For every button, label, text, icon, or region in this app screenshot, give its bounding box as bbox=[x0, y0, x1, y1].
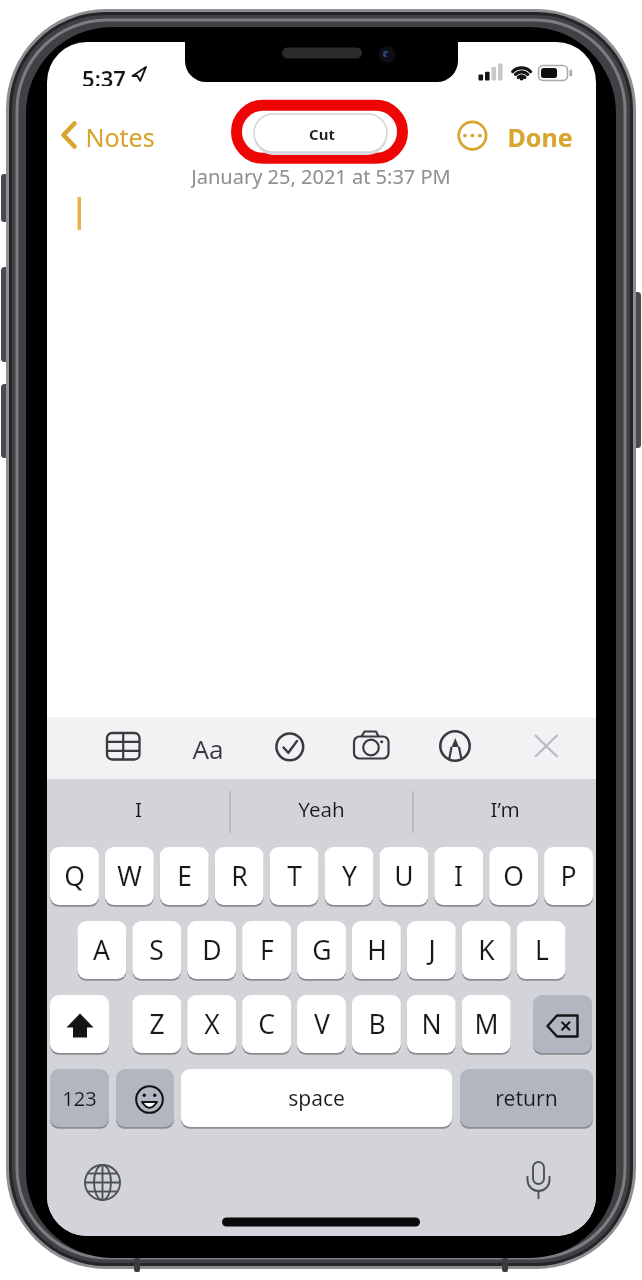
staticText: return bbox=[495, 1084, 558, 1113]
button[interactable]: J bbox=[407, 921, 456, 979]
staticText: X bbox=[204, 1006, 220, 1042]
button[interactable] bbox=[86, 1165, 122, 1201]
staticText: E bbox=[177, 858, 192, 894]
button[interactable] bbox=[116, 1069, 174, 1127]
button[interactable] bbox=[524, 722, 566, 764]
staticText: P bbox=[560, 858, 577, 894]
button[interactable]: Done bbox=[505, 120, 575, 150]
button[interactable]: S bbox=[132, 921, 181, 979]
staticText: B bbox=[368, 1006, 386, 1042]
button[interactable]: space bbox=[181, 1069, 452, 1127]
button[interactable]: X bbox=[187, 995, 236, 1053]
staticText: O bbox=[503, 858, 524, 894]
button[interactable]: K bbox=[462, 921, 511, 979]
button[interactable]: Aa bbox=[186, 731, 230, 760]
button[interactable]: L bbox=[517, 921, 566, 979]
staticText: J bbox=[428, 932, 436, 968]
button[interactable] bbox=[343, 722, 398, 764]
staticText: January 25, 2021 at 5:37 PM bbox=[191, 163, 451, 189]
staticText: W bbox=[117, 858, 142, 894]
button[interactable]: 123 bbox=[50, 1069, 109, 1127]
button[interactable]: Z bbox=[132, 995, 181, 1053]
button[interactable]: T bbox=[270, 847, 319, 905]
staticText: 123 bbox=[62, 1085, 97, 1112]
staticText: G bbox=[312, 932, 332, 968]
button[interactable]: M bbox=[462, 995, 511, 1053]
button[interactable]: Y bbox=[325, 847, 374, 905]
button[interactable]: F bbox=[242, 921, 291, 979]
button[interactable]: Notes bbox=[85, 120, 180, 150]
staticText: Q bbox=[64, 858, 85, 894]
staticText: A bbox=[93, 932, 110, 968]
staticText: H bbox=[367, 932, 387, 968]
staticText: Yeah bbox=[298, 795, 345, 823]
button[interactable]: E bbox=[160, 847, 209, 905]
staticText: I bbox=[454, 858, 463, 894]
button[interactable] bbox=[432, 722, 476, 764]
button[interactable]: N bbox=[407, 995, 456, 1053]
staticText: K bbox=[478, 932, 495, 968]
button[interactable]: D bbox=[187, 921, 236, 979]
staticText: Notes bbox=[85, 120, 155, 150]
button[interactable]: H bbox=[352, 921, 401, 979]
staticText: 5:37 bbox=[82, 63, 126, 86]
staticText: I’m bbox=[490, 795, 520, 823]
button[interactable]: I’m bbox=[413, 785, 596, 833]
staticText: Aa bbox=[192, 731, 224, 760]
staticText: I bbox=[135, 795, 142, 823]
button[interactable]: B bbox=[352, 995, 401, 1053]
staticText: R bbox=[231, 858, 248, 894]
staticText: M bbox=[474, 1006, 499, 1042]
button[interactable]: W bbox=[105, 847, 154, 905]
staticText: Z bbox=[149, 1006, 165, 1042]
button[interactable]: G bbox=[297, 921, 346, 979]
button[interactable] bbox=[520, 1158, 558, 1202]
button[interactable] bbox=[533, 995, 592, 1053]
button[interactable] bbox=[266, 722, 310, 764]
button[interactable] bbox=[60, 118, 84, 152]
button[interactable]: U bbox=[379, 847, 428, 905]
staticText: S bbox=[149, 932, 164, 968]
button[interactable]: A bbox=[77, 921, 126, 979]
staticText: D bbox=[202, 932, 222, 968]
button[interactable]: C bbox=[242, 995, 291, 1053]
staticText: F bbox=[260, 932, 274, 968]
button[interactable]: P bbox=[544, 847, 593, 905]
staticText: L bbox=[535, 932, 549, 968]
button[interactable]: V bbox=[297, 995, 346, 1053]
button[interactable]: Yeah bbox=[230, 785, 413, 833]
button[interactable]: I bbox=[47, 785, 230, 833]
staticText: T bbox=[287, 858, 302, 894]
staticText: C bbox=[258, 1006, 275, 1042]
button[interactable] bbox=[50, 995, 109, 1053]
button[interactable]: O bbox=[489, 847, 538, 905]
button[interactable]: return bbox=[460, 1069, 593, 1127]
button[interactable]: R bbox=[215, 847, 264, 905]
staticText: V bbox=[314, 1006, 330, 1042]
button[interactable]: I bbox=[434, 847, 483, 905]
staticText: Y bbox=[342, 858, 357, 894]
staticText: space bbox=[288, 1084, 345, 1113]
button[interactable]: Cut bbox=[292, 120, 352, 147]
staticText: Cut bbox=[309, 124, 335, 144]
button[interactable] bbox=[100, 722, 148, 764]
staticText: U bbox=[394, 858, 414, 894]
staticText: Done bbox=[507, 120, 573, 150]
staticText: N bbox=[421, 1006, 442, 1042]
button[interactable] bbox=[456, 119, 489, 152]
button[interactable]: Q bbox=[50, 847, 99, 905]
